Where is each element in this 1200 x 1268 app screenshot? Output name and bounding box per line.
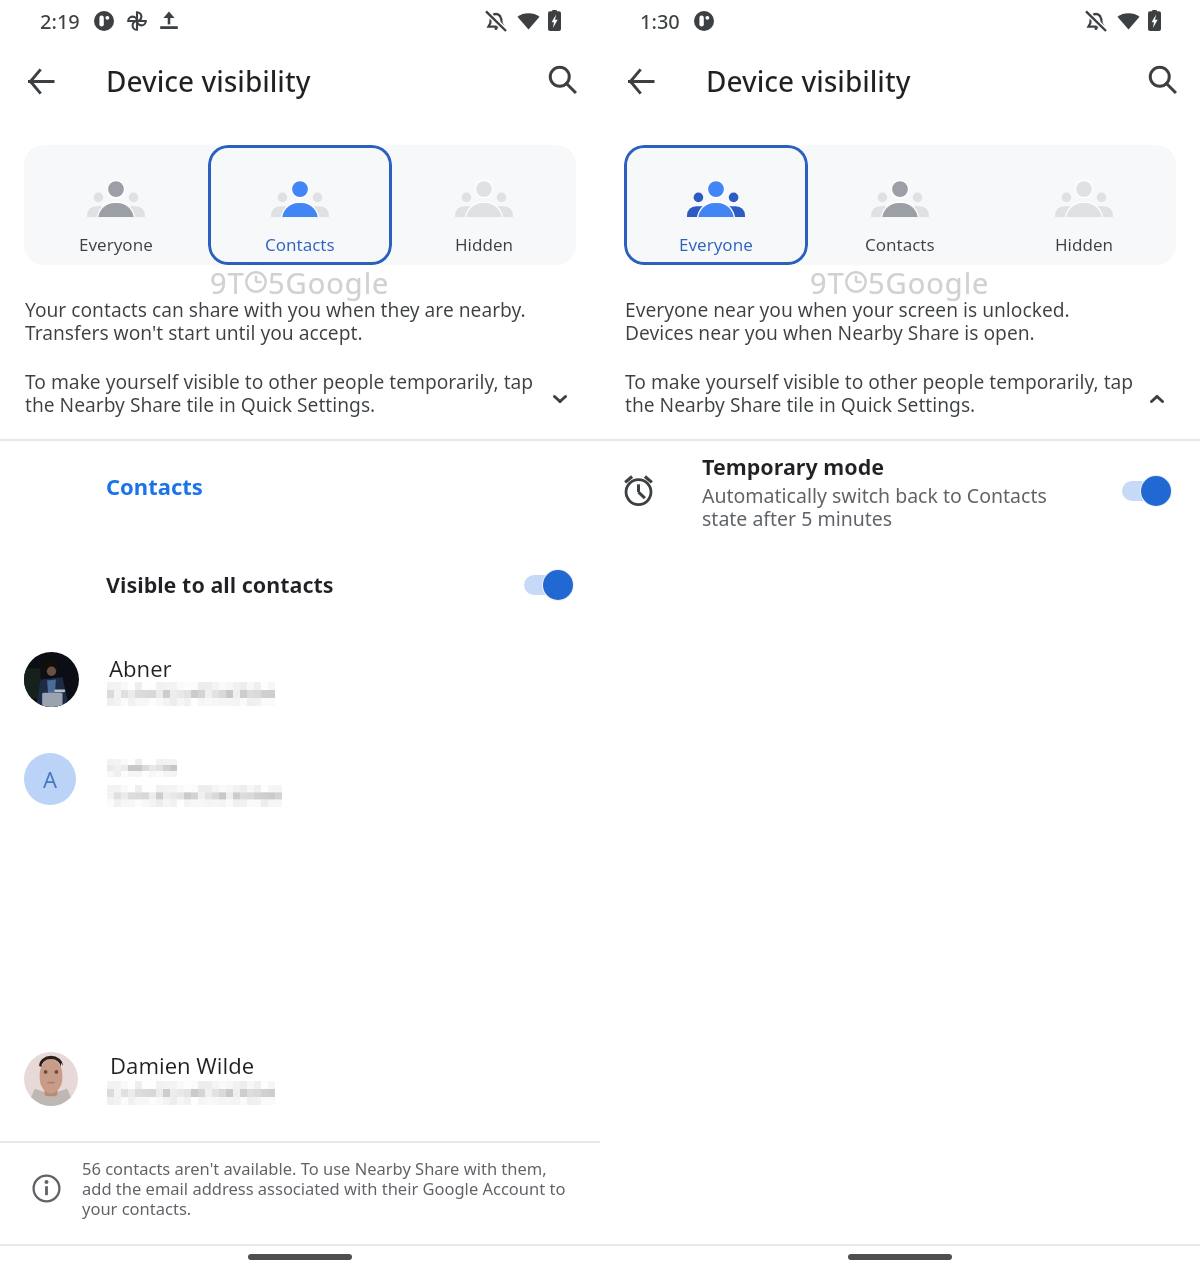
button[interactable]: A <box>0 745 600 815</box>
staticText: To make yourself visible to other people… <box>625 371 1134 417</box>
button[interactable]: Back <box>617 57 665 105</box>
staticText: 56 contacts aren't available. To use Nea… <box>82 1160 566 1220</box>
button[interactable]: Contacts <box>208 145 392 265</box>
button[interactable]: Hidden <box>392 145 576 265</box>
button[interactable]: Search <box>1138 55 1186 103</box>
button[interactable]: Search <box>538 55 586 103</box>
staticText: Temporary mode <box>702 452 885 481</box>
button[interactable]: Toggle <box>1122 471 1171 511</box>
staticText: 9T <box>210 263 245 302</box>
staticText: Damien Wilde <box>110 1050 255 1080</box>
staticText: Automatically switch back to Contacts st… <box>702 485 1047 531</box>
button[interactable]: Collapse <box>1137 379 1177 419</box>
staticText: Everyone near you when your screen is un… <box>625 299 1070 345</box>
staticText: Visible to all contacts <box>106 570 334 599</box>
staticText: Contacts <box>865 233 935 256</box>
staticText: Contacts <box>265 233 335 256</box>
staticText: To make yourself visible to other people… <box>25 371 534 417</box>
button[interactable]: Temporary mode <box>600 450 1200 542</box>
button[interactable]: Damien Wilde <box>0 1044 600 1114</box>
button[interactable]: Toggle <box>524 565 573 605</box>
button[interactable]: Everyone <box>24 145 208 265</box>
staticText: Everyone <box>79 233 153 256</box>
staticText: Abner <box>109 653 172 683</box>
staticText: Your contacts can share with you when th… <box>25 299 526 345</box>
staticText: Contacts <box>106 471 203 501</box>
staticText: 1:30 <box>640 8 680 35</box>
button[interactable]: Everyone <box>624 145 808 265</box>
button[interactable]: Back <box>17 57 65 105</box>
staticText: Everyone <box>679 233 753 256</box>
staticText: Hidden <box>455 233 513 256</box>
button[interactable]: Abner <box>0 644 600 714</box>
staticText: Device visibility <box>706 62 911 100</box>
staticText: Device visibility <box>106 62 311 100</box>
staticText: A <box>43 764 58 794</box>
staticText: 9T <box>810 263 845 302</box>
staticText: 5Google <box>868 263 990 302</box>
button[interactable]: Hidden <box>992 145 1176 265</box>
staticText: Hidden <box>1055 233 1113 256</box>
button[interactable]: Visible to all contacts <box>0 552 600 616</box>
button[interactable]: Expand <box>540 379 580 419</box>
button[interactable]: Contacts <box>808 145 992 265</box>
staticText: 5Google <box>268 263 390 302</box>
staticText: 2:19 <box>40 8 80 35</box>
